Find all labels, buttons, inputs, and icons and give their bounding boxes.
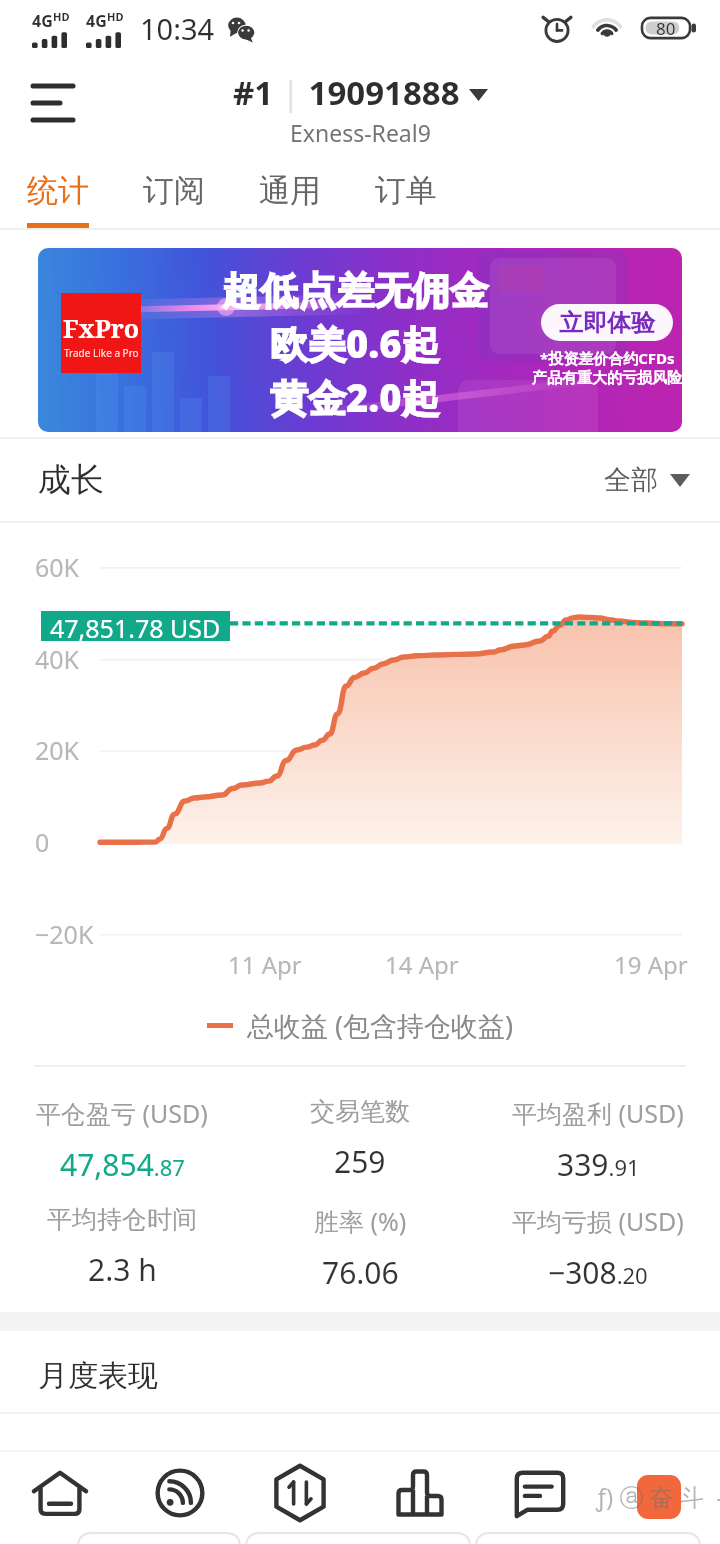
staticText: 平均持仓时间 (47, 1204, 197, 1235)
button[interactable]: Trade (240, 1442, 360, 1544)
button[interactable]: Messages (480, 1442, 600, 1544)
staticText: 立即体验 (559, 308, 655, 338)
button[interactable]: 统计 (0, 152, 116, 230)
button[interactable]: 通用 (232, 152, 348, 230)
staticText: 339.91 (557, 1144, 640, 1185)
staticText: 40K (35, 642, 80, 676)
button[interactable]: 立即体验 (541, 304, 673, 341)
staticText: 月度表现 (38, 1357, 158, 1395)
staticText: −20K (35, 917, 94, 951)
staticText: ƒ) ⓐ 奋 斗 - (596, 1480, 720, 1513)
button[interactable]: Quotes (120, 1442, 240, 1544)
button[interactable]: 订单 (348, 152, 464, 230)
staticText: 订单 (375, 171, 437, 210)
button[interactable]: #1 | 19091888 (233, 70, 488, 148)
button[interactable]: 平均持仓时间 (6, 1204, 238, 1290)
staticText: 11 Apr (228, 948, 302, 981)
staticText: 欧美0.6起 (270, 317, 440, 369)
staticText: 超低点差无佣金 (222, 267, 488, 315)
staticText: *投资差价合约CFDs (540, 348, 675, 368)
staticText: 10:34 (140, 9, 215, 48)
button[interactable]: Home (0, 1442, 120, 1544)
button[interactable]: Charts (360, 1442, 480, 1544)
staticText: Exness-Real9 (290, 117, 431, 148)
staticText: 4G (86, 10, 107, 32)
button[interactable]: Menu (20, 70, 86, 136)
staticText: 4G (32, 10, 53, 32)
staticText: #1 | 19091888 (233, 70, 460, 115)
staticText: 平均盈利 (USD) (512, 1096, 684, 1130)
staticText: 80 (656, 17, 676, 40)
staticText: 成长 (38, 459, 104, 501)
staticText: 黄金2.0起 (270, 371, 440, 423)
staticText: 总收益 (包含持仓收益) (247, 1007, 514, 1044)
staticText: 平均亏损 (USD) (512, 1204, 684, 1238)
staticText: 14 Apr (385, 948, 459, 981)
button[interactable]: 平均盈利 (USD) (482, 1096, 714, 1185)
staticText: 通用 (259, 171, 321, 210)
staticText: 胜率 (%) (314, 1204, 407, 1238)
staticText: 19 Apr (614, 948, 688, 981)
staticText: 76.06 (322, 1252, 399, 1293)
staticText: 全部 (604, 463, 658, 497)
staticText: 平仓盈亏 (USD) (36, 1096, 208, 1130)
button[interactable]: 交易笔数 (244, 1096, 476, 1182)
staticText: 0 (35, 825, 50, 859)
staticText: 60K (35, 550, 80, 584)
staticText: 统计 (27, 171, 89, 210)
button[interactable]: 全部 (604, 463, 690, 497)
staticText: HD (107, 9, 124, 24)
button[interactable]: 平仓盈亏 (USD) (6, 1096, 238, 1185)
staticText: Trade Like a Pro (64, 346, 139, 360)
button[interactable]: FxPro (38, 248, 682, 432)
button[interactable]: 订阅 (116, 152, 232, 230)
staticText: 47,854.87 (60, 1144, 185, 1185)
staticText: 259 (334, 1141, 386, 1182)
staticText: 交易笔数 (310, 1096, 410, 1127)
staticText: FxPro (63, 311, 140, 345)
staticText: 订阅 (143, 171, 205, 210)
staticText: 47,851.78 USD (50, 611, 221, 641)
staticText: 20K (35, 733, 80, 767)
button[interactable]: 平均亏损 (USD) (482, 1204, 714, 1293)
staticText: 2.3 h (88, 1249, 157, 1290)
button[interactable]: 胜率 (%) (244, 1204, 476, 1293)
staticText: −308.20 (548, 1252, 648, 1293)
staticText: HD (53, 9, 70, 24)
staticText: 产品有重大的亏损风险 (532, 369, 682, 388)
